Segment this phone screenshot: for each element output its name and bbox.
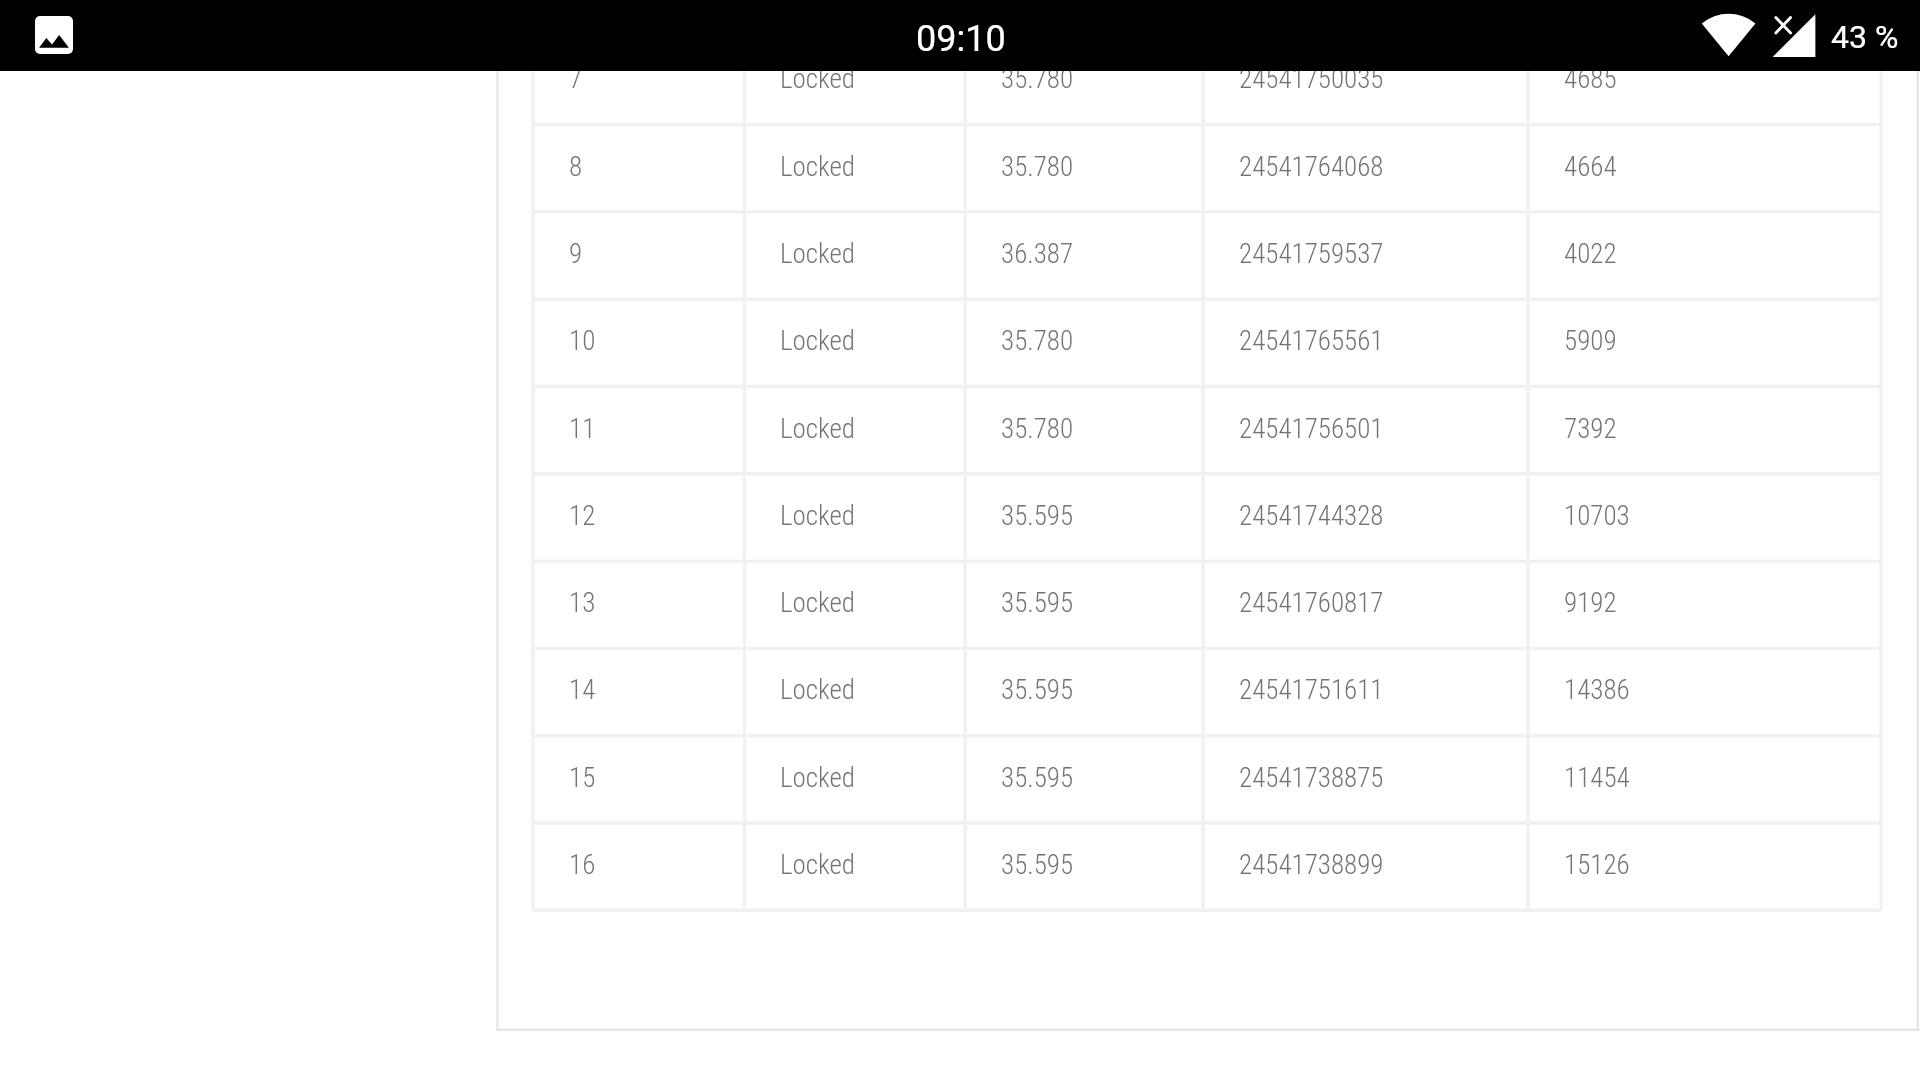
staticText: 35.595 [1001,587,1074,619]
staticText: Locked [780,151,856,183]
staticText: 43 % [1831,18,1899,56]
staticText: 24541760817 [1239,587,1384,619]
staticText: 35.780 [1001,151,1074,183]
staticText: 35.780 [1001,63,1074,95]
staticText: Locked [780,849,856,881]
button[interactable]: 8 [533,125,1881,212]
staticText: Locked [780,63,856,95]
staticText: 24541765561 [1239,325,1384,357]
staticText: 24541750035 [1239,63,1384,95]
button[interactable]: 11 [533,387,1881,474]
staticText: 16 [569,849,596,881]
button[interactable]: 10 [533,299,1881,386]
staticText: 9 [569,238,583,270]
staticText: 09:10 [916,18,1006,60]
staticText: Locked [780,762,856,794]
button[interactable]: 15 [533,736,1881,823]
button[interactable]: 16 [533,823,1881,910]
staticText: Locked [780,674,856,706]
staticText: 24541764068 [1239,151,1384,183]
staticText: Locked [780,587,856,619]
staticText: 24541751611 [1239,674,1384,706]
staticText: 35.595 [1001,500,1074,532]
staticText: Locked [780,238,856,270]
staticText: 24541738875 [1239,762,1384,794]
staticText: 4664 [1564,151,1617,183]
staticText: 8 [569,151,583,183]
staticText: Locked [780,500,856,532]
staticText: 14386 [1564,674,1630,706]
staticText: 15126 [1564,849,1630,881]
other: Wi-Fi connected [1686,0,1772,71]
staticText: 24541744328 [1239,500,1384,532]
staticText: 35.780 [1001,413,1074,445]
staticText: 35.780 [1001,325,1074,357]
button[interactable]: 14 [533,648,1881,735]
button[interactable]: 7 [533,37,1881,124]
button[interactable]: Screenshot notification [35,16,73,54]
button[interactable]: 13 [533,561,1881,648]
other: No SIM card [1770,12,1818,59]
staticText: 35.595 [1001,849,1074,881]
staticText: 4685 [1564,63,1617,95]
button[interactable]: 12 [533,474,1881,561]
staticText: 36.387 [1001,238,1074,270]
staticText: 11454 [1564,762,1630,794]
staticText: 4022 [1564,238,1617,270]
staticText: 11 [569,413,596,445]
staticText: 24541759537 [1239,238,1384,270]
staticText: 35.595 [1001,762,1074,794]
staticText: 24541738899 [1239,849,1384,881]
staticText: 13 [569,587,596,619]
staticText: Locked [780,413,856,445]
staticText: 12 [569,500,596,532]
staticText: 9192 [1564,587,1617,619]
staticText: 5909 [1564,325,1617,357]
staticText: 10 [569,325,596,357]
staticText: 10703 [1564,500,1630,532]
staticText: 14 [569,674,596,706]
staticText: 24541756501 [1239,413,1384,445]
staticText: 15 [569,762,596,794]
staticText: 7 [569,63,583,95]
staticText: 7392 [1564,413,1617,445]
button[interactable]: 9 [533,212,1881,299]
staticText: 35.595 [1001,674,1074,706]
staticText: Locked [780,325,856,357]
